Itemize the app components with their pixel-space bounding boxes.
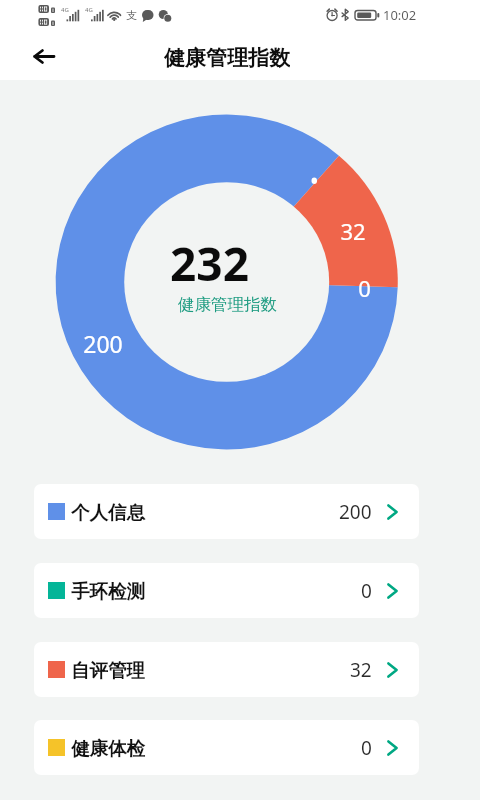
staticText: 手环检测 — [71, 580, 145, 603]
button[interactable]: 手环检测 — [34, 563, 419, 618]
staticText: 4G — [61, 6, 69, 14]
staticText: 个人信息 — [71, 501, 145, 524]
staticText: 4G — [85, 6, 93, 14]
staticText: 232 — [170, 232, 249, 292]
staticText: 10:02 — [383, 6, 417, 24]
staticText: 32 — [340, 216, 366, 246]
staticText: 0 — [358, 273, 371, 303]
staticText: 自评管理 — [71, 659, 145, 682]
staticText: 200 — [339, 499, 372, 525]
button[interactable]: Back — [21, 34, 65, 78]
staticText: 支 — [126, 8, 137, 22]
staticText: 健康体检 — [71, 737, 145, 760]
staticText: 0 — [361, 578, 372, 604]
staticText: 0 — [361, 735, 372, 761]
staticText: 健康管理指数 — [164, 45, 290, 69]
button[interactable]: 健康体检 — [34, 720, 419, 775]
staticText: 健康管理指数 — [178, 294, 277, 315]
button[interactable]: 自评管理 — [34, 642, 419, 697]
button[interactable]: 个人信息 — [34, 484, 419, 539]
staticText: 32 — [350, 657, 372, 683]
staticText: 200 — [83, 328, 123, 359]
